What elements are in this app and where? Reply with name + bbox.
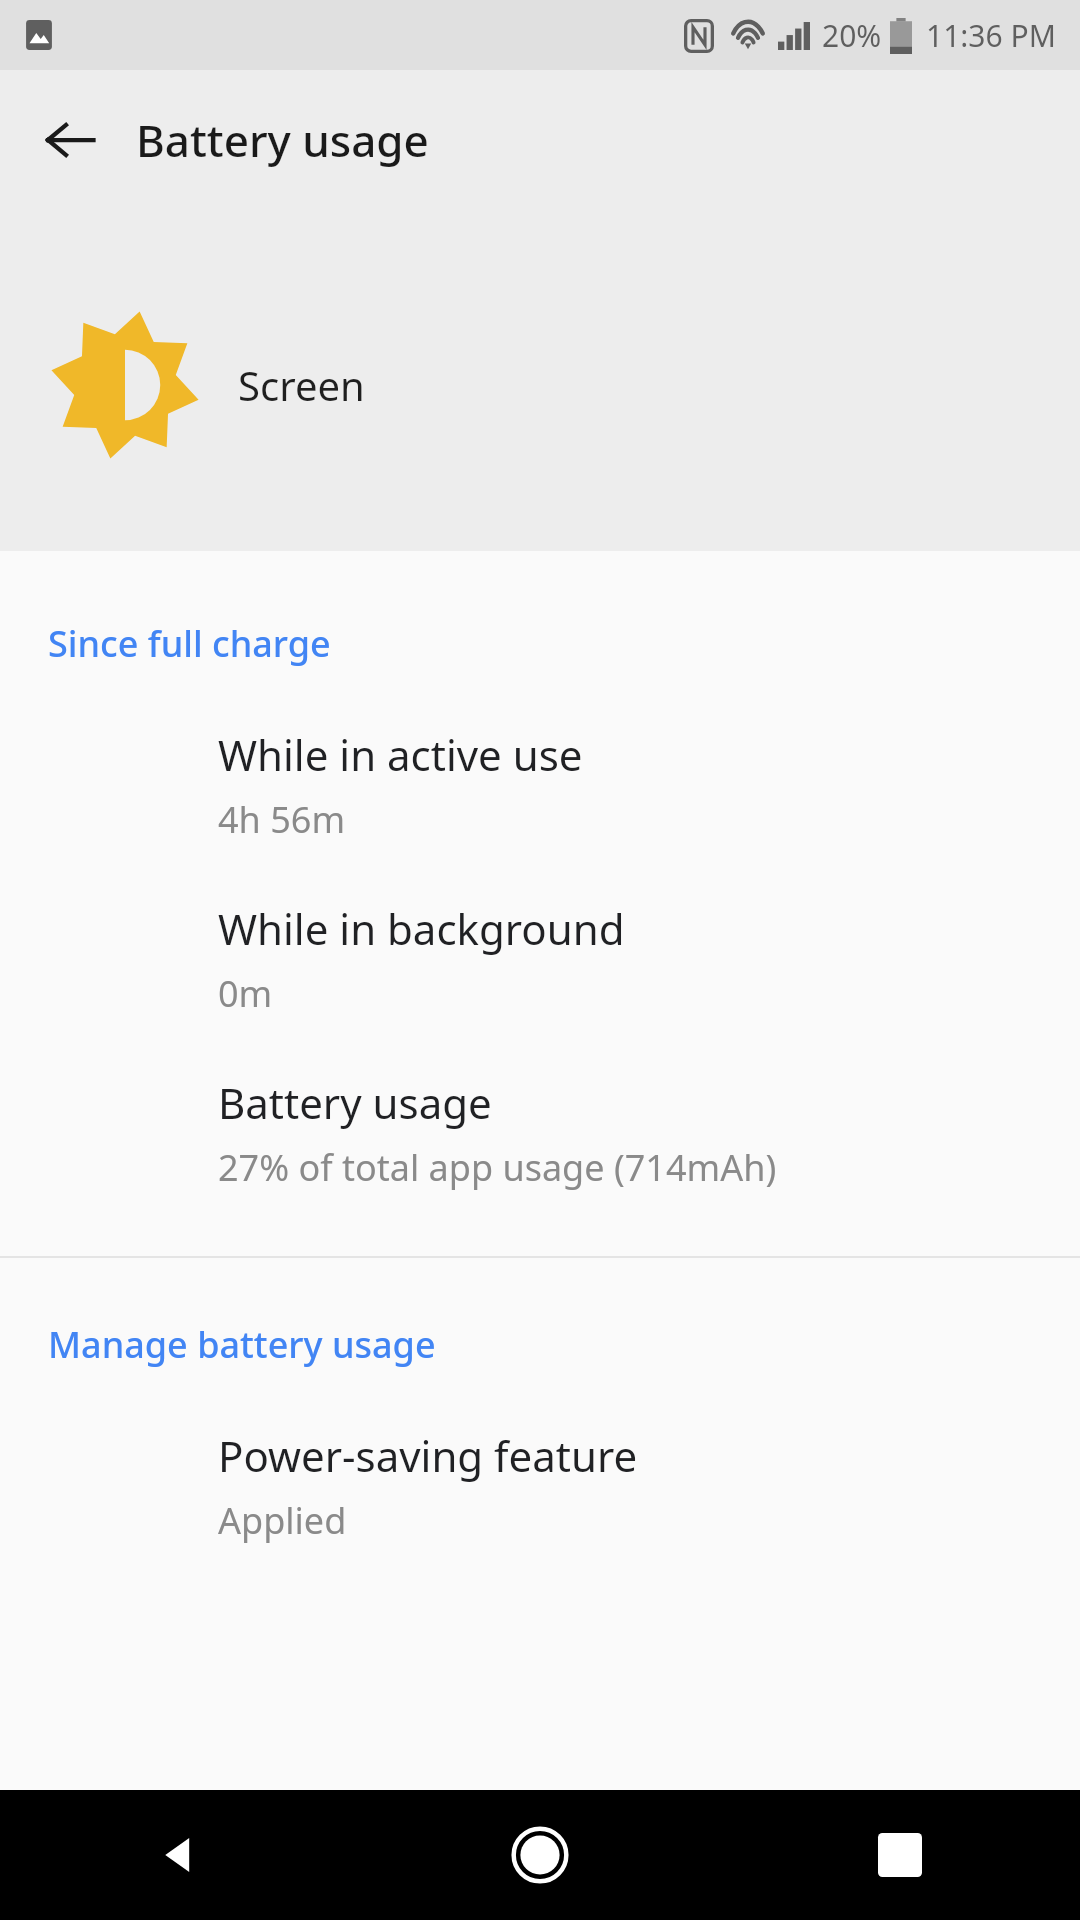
staticText: Power-saving feature — [218, 1427, 638, 1484]
button[interactable]: Home — [360, 1790, 720, 1920]
staticText: While in active use — [218, 726, 583, 783]
button[interactable]: Back — [0, 1790, 360, 1920]
staticText: 0m — [218, 969, 273, 1018]
button[interactable]: Power-saving feature — [0, 1421, 1080, 1551]
staticText: Manage battery usage — [48, 1320, 436, 1369]
button[interactable]: Recent apps — [720, 1790, 1080, 1920]
staticText: Since full charge — [48, 619, 331, 668]
staticText: 20% — [822, 15, 882, 56]
staticText: While in background — [218, 900, 625, 957]
button[interactable]: Back — [26, 96, 114, 184]
staticText: Applied — [218, 1496, 347, 1545]
staticText: 27% of total app usage (714mAh) — [218, 1143, 777, 1192]
staticText: 4h 56m — [218, 795, 346, 844]
button[interactable]: While in background — [0, 894, 1080, 1024]
button[interactable]: While in active use — [0, 720, 1080, 850]
staticText: 11:36 PM — [926, 15, 1056, 56]
staticText: Battery usage — [136, 110, 429, 170]
button[interactable]: Battery usage — [0, 1068, 1080, 1198]
staticText: Screen — [238, 358, 365, 412]
staticText: Battery usage — [218, 1074, 492, 1131]
